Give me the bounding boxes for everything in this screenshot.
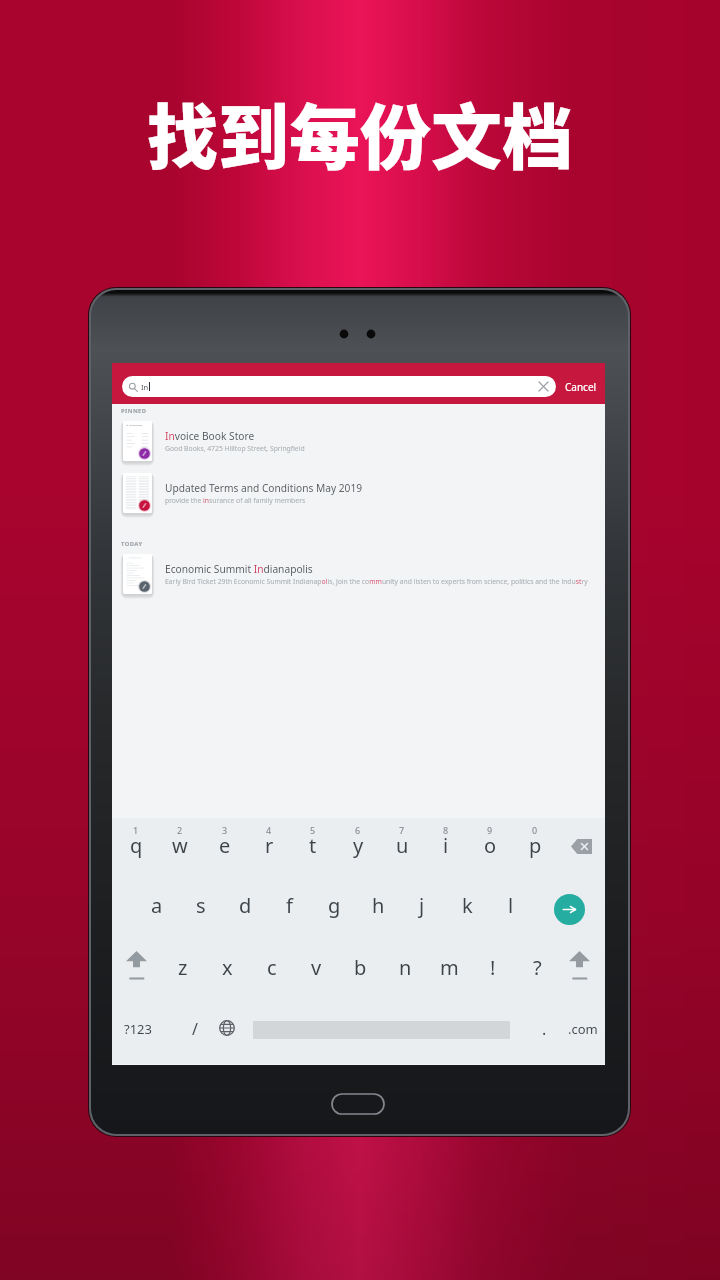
button[interactable]: Search [545, 880, 593, 942]
button[interactable]: 9 [468, 818, 512, 880]
button[interactable]: m [427, 942, 471, 1004]
button[interactable]: Invoice Book Store [112, 415, 605, 467]
staticText: 4 [266, 824, 272, 836]
button[interactable]: ?123 [109, 1004, 167, 1064]
staticText: g [328, 892, 341, 919]
button[interactable]: ! [471, 942, 515, 1004]
staticText: 1 [133, 824, 139, 836]
button[interactable]: f [267, 880, 311, 942]
staticText: In [141, 382, 149, 392]
button[interactable]: Backspace [559, 818, 603, 880]
button[interactable]: 6 [336, 818, 380, 880]
staticText: 3 [222, 824, 228, 836]
button[interactable]: z [161, 942, 205, 1004]
staticText: ! [490, 954, 496, 981]
staticText: n [399, 954, 412, 981]
staticText: e [219, 832, 231, 859]
staticText: m [440, 954, 459, 981]
staticText: 0 [532, 824, 538, 836]
staticText: Early Bird Ticket 29th Economic Summit I… [165, 577, 588, 586]
staticText: Invoice Book Store [165, 429, 255, 443]
staticText: ?123 [124, 1020, 152, 1038]
staticText: l [508, 892, 514, 919]
staticText: PINNED [121, 407, 147, 415]
button[interactable]: . [526, 1004, 562, 1064]
staticText: k [462, 892, 473, 919]
staticText: 2 [177, 824, 183, 836]
staticText: / [192, 1018, 198, 1040]
staticText: y [353, 832, 364, 859]
staticText: i [443, 832, 449, 859]
button[interactable]: g [312, 880, 356, 942]
button[interactable]: Shift [559, 942, 600, 1004]
button[interactable]: Space [252, 1004, 524, 1064]
staticText: 7 [399, 824, 405, 836]
button[interactable]: 5 [291, 818, 335, 880]
button[interactable]: j [400, 880, 444, 942]
button[interactable]: b [338, 942, 382, 1004]
button[interactable]: Clear search [538, 381, 549, 392]
button[interactable]: 0 [513, 818, 557, 880]
button[interactable]: 7 [380, 818, 424, 880]
button[interactable]: 1 [114, 818, 158, 880]
staticText: f [286, 892, 293, 919]
button[interactable]: a [135, 880, 179, 942]
staticText: .com [568, 1020, 598, 1038]
staticText: c [267, 954, 277, 981]
button[interactable]: d [223, 880, 267, 942]
staticText: u [396, 832, 409, 859]
button[interactable]: / [175, 1004, 215, 1064]
staticText: 5 [310, 824, 316, 836]
button[interactable]: 4 [247, 818, 291, 880]
button[interactable]: v [294, 942, 338, 1004]
button[interactable]: .com [562, 1004, 604, 1064]
staticText: Good Books, 4725 Hilltop Street, Springf… [165, 444, 305, 453]
staticText: r [265, 832, 274, 859]
staticText: b [354, 954, 367, 981]
staticText: q [130, 832, 143, 859]
staticText: a [151, 892, 163, 919]
staticText: j [419, 892, 425, 919]
button[interactable]: ? [515, 942, 559, 1004]
button[interactable]: In [122, 376, 556, 397]
staticText: v [311, 954, 322, 981]
button[interactable]: l [489, 880, 533, 942]
staticText: 9 [487, 824, 493, 836]
button[interactable]: Change language [208, 1004, 246, 1064]
staticText: o [484, 832, 497, 859]
staticText: ? [533, 954, 542, 981]
button[interactable]: 8 [424, 818, 468, 880]
button[interactable]: x [205, 942, 249, 1004]
staticText: s [196, 892, 206, 919]
staticText: z [178, 954, 188, 981]
button[interactable]: n [383, 942, 427, 1004]
staticText: t [309, 832, 317, 859]
staticText: Economic Summit Indianapolis [165, 562, 313, 576]
staticText: Updated Terms and Conditions May 2019 [165, 481, 363, 495]
button[interactable]: k [445, 880, 489, 942]
button[interactable]: h [356, 880, 400, 942]
staticText: 6 [355, 824, 361, 836]
staticText: p [529, 832, 542, 859]
button[interactable]: Updated Terms and Conditions May 2019 [112, 467, 605, 519]
button[interactable]: Shift [116, 942, 157, 1004]
staticText: . [542, 1018, 547, 1040]
button[interactable]: Economic Summit Indianapolis [112, 548, 605, 600]
staticText: 找到每份文档 [147, 81, 574, 184]
staticText: TODAY [121, 540, 143, 548]
button[interactable]: 2 [158, 818, 202, 880]
button[interactable]: s [179, 880, 223, 942]
button[interactable]: c [250, 942, 294, 1004]
staticText: x [222, 954, 233, 981]
staticText: provide the insurance of all family memb… [165, 496, 306, 505]
staticText: 8 [443, 824, 449, 836]
staticText: h [372, 892, 385, 919]
staticText: Cancel [565, 380, 597, 394]
staticText: d [239, 892, 252, 919]
button[interactable]: Cancel [561, 376, 601, 397]
button[interactable]: 3 [203, 818, 247, 880]
staticText: w [172, 832, 188, 859]
